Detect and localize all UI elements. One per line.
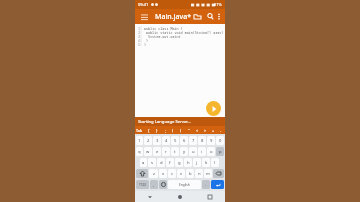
- staticText: i: [201, 149, 203, 155]
- button[interactable]: l: [211, 158, 219, 167]
- button[interactable]: z: [149, 169, 158, 178]
- button[interactable]: }: [153, 126, 161, 134]
- staticText: ": [188, 128, 190, 133]
- button[interactable]: -: [217, 126, 225, 134]
- button[interactable]: n: [195, 169, 203, 178]
- button[interactable]: .: [202, 180, 210, 189]
- staticText: <: [196, 128, 199, 133]
- button[interactable]: c: [168, 169, 176, 178]
- button[interactable]: More options: [217, 11, 221, 22]
- staticText: }: [144, 42, 147, 46]
- staticText: Starting Language Server...: [138, 119, 191, 125]
- staticText: u: [192, 149, 195, 155]
- staticText: Tab: [136, 128, 143, 133]
- staticText: 3: [138, 34, 141, 38]
- button[interactable]: >: [201, 126, 209, 134]
- button[interactable]: v: [177, 169, 185, 178]
- button[interactable]: f: [166, 158, 174, 167]
- button[interactable]: Enter: [211, 180, 224, 189]
- button[interactable]: 2: [144, 136, 152, 145]
- button[interactable]: x: [159, 169, 167, 178]
- button[interactable]: 3: [153, 136, 161, 145]
- button[interactable]: ;: [161, 126, 169, 134]
- button[interactable]: Run: [206, 101, 221, 116]
- button[interactable]: 0: [216, 136, 224, 145]
- staticText: k: [205, 160, 208, 166]
- button[interactable]: a: [140, 158, 147, 167]
- button[interactable]: <: [193, 126, 201, 134]
- button[interactable]: Shift: [136, 169, 148, 178]
- staticText: h: [187, 160, 190, 166]
- staticText: x: [162, 171, 165, 177]
- staticText: d: [160, 160, 163, 166]
- staticText: y: [183, 149, 186, 155]
- button[interactable]: u: [189, 147, 197, 156]
- button[interactable]: Menu: [139, 12, 149, 22]
- button[interactable]: 1: [136, 136, 143, 145]
- staticText: public class Main {: [144, 26, 183, 30]
- button[interactable]: Recents: [195, 191, 225, 202]
- button[interactable]: 7: [189, 136, 197, 145]
- button[interactable]: 4: [162, 136, 170, 145]
- button[interactable]: d: [157, 158, 165, 167]
- button[interactable]: g: [175, 158, 183, 167]
- button[interactable]: Tab: [135, 126, 144, 134]
- button[interactable]: Folder: [192, 11, 203, 22]
- button[interactable]: {: [144, 126, 153, 134]
- staticText: }: [146, 38, 149, 42]
- button[interactable]: o: [207, 147, 215, 156]
- button[interactable]: English: [168, 180, 201, 189]
- button[interactable]: ): [177, 126, 185, 134]
- staticText: 3: [156, 138, 159, 144]
- staticText: 2: [147, 138, 150, 144]
- staticText: {: [148, 128, 150, 133]
- staticText: 7: [192, 138, 195, 144]
- staticText: n: [198, 171, 201, 177]
- button[interactable]: 9: [207, 136, 215, 145]
- staticText: 31%: [214, 2, 222, 7]
- staticText: 9: [210, 138, 213, 144]
- button[interactable]: m: [204, 169, 212, 178]
- staticText: ,: [153, 182, 155, 188]
- button[interactable]: i: [198, 147, 206, 156]
- staticText: 5: [138, 42, 141, 46]
- staticText: 1: [138, 138, 141, 144]
- staticText: ;: [165, 128, 166, 133]
- button[interactable]: 6: [180, 136, 188, 145]
- button[interactable]: q: [136, 147, 143, 156]
- staticText: ?123: [139, 183, 146, 187]
- button[interactable]: Backspace: [213, 169, 224, 178]
- button[interactable]: p: [216, 147, 224, 156]
- staticText: 1: [138, 26, 141, 30]
- button[interactable]: Back: [135, 191, 165, 202]
- button[interactable]: y: [180, 147, 188, 156]
- staticText: s: [151, 160, 154, 166]
- button[interactable]: e: [153, 147, 161, 156]
- staticText: public static void main(String[] args) {: [146, 30, 225, 34]
- button[interactable]: (: [169, 126, 177, 134]
- button[interactable]: +: [209, 126, 217, 134]
- button[interactable]: Home: [165, 191, 195, 202]
- button[interactable]: j: [193, 158, 201, 167]
- staticText: q: [138, 149, 141, 155]
- staticText: z: [153, 171, 155, 177]
- button[interactable]: Emoji: [159, 180, 167, 189]
- button[interactable]: k: [202, 158, 210, 167]
- staticText: }: [156, 128, 158, 133]
- button[interactable]: ": [185, 126, 193, 134]
- button[interactable]: ?123: [136, 180, 149, 189]
- button[interactable]: t: [171, 147, 179, 156]
- button[interactable]: b: [186, 169, 194, 178]
- staticText: Main.java*: [155, 12, 192, 22]
- button[interactable]: r: [162, 147, 170, 156]
- button[interactable]: 5: [171, 136, 179, 145]
- button[interactable]: s: [148, 158, 156, 167]
- staticText: v: [180, 171, 183, 177]
- staticText: p: [219, 149, 222, 155]
- button[interactable]: w: [144, 147, 152, 156]
- button[interactable]: Search: [205, 11, 216, 22]
- staticText: ): [180, 128, 182, 133]
- button[interactable]: ,: [150, 180, 158, 189]
- button[interactable]: 8: [198, 136, 206, 145]
- button[interactable]: h: [184, 158, 192, 167]
